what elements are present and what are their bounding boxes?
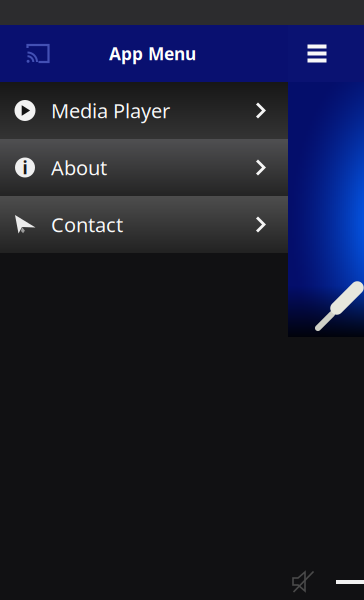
button[interactable]: Media Player: [0, 82, 288, 139]
button[interactable]: Mute: [292, 570, 315, 593]
staticText: i: [22, 156, 27, 179]
button[interactable]: Cast: [21, 32, 55, 74]
staticText: Contact: [51, 211, 123, 238]
button[interactable]: Contact: [0, 196, 288, 253]
button[interactable]: Menu: [297, 33, 337, 73]
button[interactable]: i: [0, 139, 288, 196]
staticText: App Menu: [109, 42, 196, 65]
staticText: Media Player: [51, 97, 170, 124]
staticText: About: [51, 154, 107, 181]
